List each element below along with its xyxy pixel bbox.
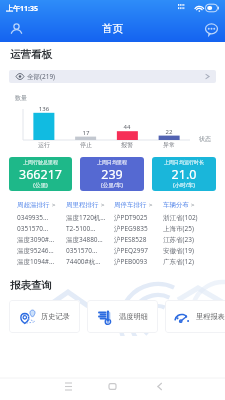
staticText: 温度1720机… <box>66 213 106 222</box>
staticText: 车辆分布 <box>163 201 189 209</box>
staticText: 74400#杭… <box>66 257 101 266</box>
staticText: 温度1094#… <box>17 257 55 266</box>
button[interactable]: 车辆分布 <box>163 201 195 209</box>
staticText: 239 <box>80 166 144 183</box>
staticText: 44 <box>111 123 143 131</box>
staticText: 数量 <box>15 94 27 102</box>
staticText: 里程报表 <box>196 312 225 321</box>
staticText: > <box>101 201 105 209</box>
button[interactable]: 上周日均里程 <box>80 157 144 191</box>
button[interactable]: Messages <box>203 21 219 37</box>
staticText: 沪PEG9835 <box>114 224 148 233</box>
staticText: (小时/车) <box>152 181 216 189</box>
staticText: 上午11:35 <box>6 4 38 14</box>
staticText: 历史记录 <box>41 312 70 321</box>
staticText: 首页 <box>102 22 123 35</box>
staticText: 沪PEQ2997 <box>114 246 148 255</box>
button[interactable]: Home <box>101 375 123 397</box>
staticText: 上周日均运行时长 <box>152 159 216 165</box>
staticText: 上海市(25) <box>163 224 194 233</box>
staticText: 报表查询 <box>10 279 52 292</box>
staticText: 异常 <box>153 141 185 149</box>
staticText: 报警 <box>111 141 143 149</box>
button[interactable]: Recents <box>57 375 79 397</box>
staticText: 沪PDT9025 <box>114 213 148 222</box>
staticText: 沪PEB0093 <box>114 257 148 266</box>
button[interactable]: 里程报表 <box>165 300 225 333</box>
staticText: 0351570… <box>66 246 98 255</box>
staticText: 上周日均里程 <box>80 159 144 165</box>
staticText: > <box>191 201 195 209</box>
staticText: 周停车排行 <box>114 201 147 209</box>
staticText: (公里/车) <box>80 181 144 189</box>
staticText: T2-5100… <box>66 224 96 233</box>
button[interactable]: 全部(219) <box>9 70 216 83</box>
staticText: 17 <box>70 129 102 137</box>
staticText: > <box>52 201 56 209</box>
button[interactable]: 上周行驶总里程 <box>9 157 72 191</box>
staticText: 温度95246… <box>17 246 54 255</box>
button[interactable]: 上周日均运行时长 <box>152 157 216 191</box>
staticText: 浙江省(102) <box>163 213 198 222</box>
staticText: 广东省(12) <box>163 257 194 266</box>
staticText: 温度明细 <box>119 312 148 321</box>
button[interactable]: 周超温排行 <box>17 201 56 209</box>
staticText: 上周行驶总里程 <box>9 159 72 165</box>
staticText: 温度3090#… <box>17 235 55 244</box>
staticText: 停止 <box>70 141 102 149</box>
staticText: 运行 <box>28 141 60 149</box>
staticText: 136 <box>28 105 60 113</box>
button[interactable]: 温度明细 <box>87 300 158 333</box>
button[interactable]: 历史记录 <box>9 300 80 333</box>
staticText: 沪PES8528 <box>114 235 147 244</box>
button[interactable]: 周里程排行 <box>66 201 105 209</box>
button[interactable]: 周停车排行 <box>114 201 153 209</box>
staticText: > <box>149 201 153 209</box>
staticText: 运营看板 <box>10 48 52 61</box>
staticText: 22 <box>153 128 185 136</box>
button[interactable]: Back <box>148 375 170 397</box>
staticText: (公里) <box>9 181 72 189</box>
staticText: 安徽省(19) <box>163 246 194 255</box>
button[interactable]: Profile <box>8 21 24 37</box>
staticText: 0351570… <box>17 224 49 233</box>
staticText: 周超温排行 <box>17 201 50 209</box>
staticText: 0349935… <box>17 213 49 222</box>
staticText: 江苏省(23) <box>163 235 194 244</box>
staticText: 全部(219) <box>27 72 56 81</box>
staticText: 温度34880… <box>66 235 103 244</box>
staticText: 21.0 <box>152 166 216 183</box>
staticText: 状态 <box>199 135 211 143</box>
staticText: 周里程排行 <box>66 201 99 209</box>
staticText: 366217 <box>9 166 72 183</box>
